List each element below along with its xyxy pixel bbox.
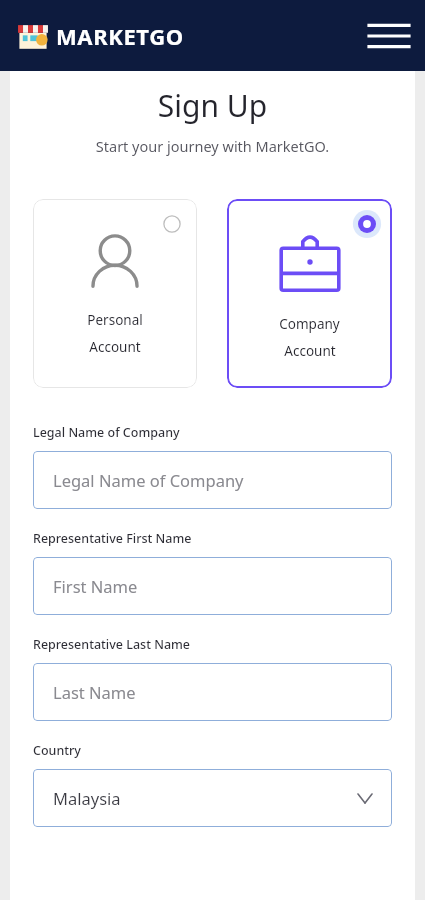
button[interactable]: First Name [33, 557, 392, 615]
button[interactable]: Personal [33, 199, 197, 388]
staticText: Account [89, 338, 141, 356]
staticText: Country [33, 742, 81, 759]
staticText: Last Name [53, 681, 136, 703]
staticText: First Name [53, 575, 138, 597]
staticText: Malaysia [53, 787, 121, 809]
staticText: Personal [87, 311, 143, 329]
button[interactable]: Last Name [33, 663, 392, 721]
button[interactable]: Malaysia [33, 769, 392, 827]
staticText: Representative First Name [33, 530, 192, 547]
other: Expand country list [358, 794, 372, 803]
staticText: Account [284, 342, 336, 360]
staticText: Legal Name of Company [33, 424, 180, 441]
button[interactable]: Company [227, 199, 392, 388]
staticText: MARKETGO [56, 21, 184, 51]
button[interactable]: Legal Name of Company [33, 451, 392, 509]
staticText: Representative Last Name [33, 636, 191, 653]
staticText: Legal Name of Company [53, 469, 244, 491]
staticText: Company [279, 315, 340, 333]
staticText: Start your journey with MarketGO. [10, 136, 415, 156]
staticText: Sign Up [10, 85, 415, 126]
button[interactable]: Open menu [363, 10, 415, 62]
